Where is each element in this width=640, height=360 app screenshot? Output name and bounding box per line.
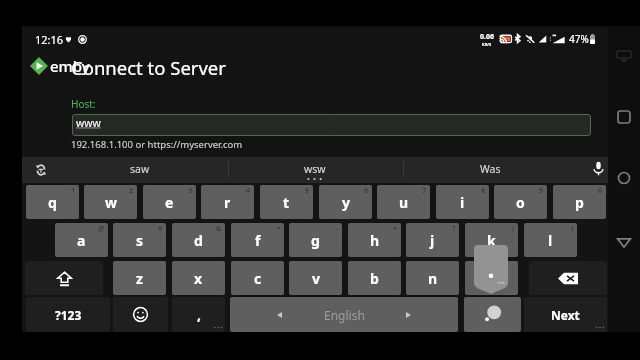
staticText: 12:16	[35, 32, 64, 47]
button[interactable]: l	[524, 223, 577, 257]
staticText: KB/S	[482, 42, 492, 47]
button[interactable]: Hide keyboard	[616, 48, 632, 64]
staticText: t	[283, 193, 290, 212]
staticText: www	[76, 116, 101, 130]
staticText: n	[428, 269, 438, 288]
button[interactable]: Shift	[25, 261, 103, 295]
button[interactable]: s	[113, 223, 166, 257]
staticText: 4	[246, 186, 251, 196]
staticText: Connect to Server	[71, 55, 226, 80]
staticText: x	[194, 269, 203, 288]
staticText: g	[311, 231, 320, 250]
staticText: f	[255, 231, 261, 250]
button[interactable]: i	[436, 185, 489, 219]
button[interactable]: m	[465, 261, 518, 295]
staticText: y	[342, 193, 350, 212]
staticText: 47%	[569, 32, 589, 46]
staticText: 2	[129, 186, 134, 196]
button[interactable]: n	[406, 261, 459, 295]
staticText: @	[98, 224, 105, 234]
staticText: saw	[130, 162, 150, 176]
button[interactable]: www	[72, 114, 591, 136]
staticText: v	[312, 269, 320, 288]
staticText: 192.168.1.100 or https://myserver.com	[71, 138, 243, 151]
button[interactable]: ?123	[26, 297, 110, 332]
button[interactable]: x	[172, 261, 225, 295]
staticText: ,	[197, 305, 201, 324]
button[interactable]: v	[289, 261, 342, 295]
staticText: d	[194, 231, 203, 250]
staticText: e	[165, 193, 174, 212]
staticText: Next	[551, 307, 580, 323]
button[interactable]: ,	[172, 297, 225, 332]
button[interactable]: k	[465, 223, 518, 257]
staticText: j	[430, 231, 435, 250]
staticText: 3	[188, 186, 193, 196]
button[interactable]: b	[348, 261, 401, 295]
staticText: k	[487, 231, 496, 250]
button[interactable]: Emoji	[113, 297, 168, 332]
staticText: (	[512, 224, 515, 234]
staticText: s	[136, 231, 144, 250]
staticText: q	[48, 193, 57, 212]
button[interactable]: d	[172, 223, 225, 257]
staticText: &	[216, 224, 222, 234]
button[interactable]: q	[26, 185, 79, 219]
staticText: i	[460, 193, 465, 212]
button[interactable]: t	[260, 185, 313, 219]
button[interactable]: Voice input	[593, 161, 604, 176]
button[interactable]: r	[201, 185, 254, 219]
button[interactable]: o	[494, 185, 547, 219]
button[interactable]: g	[289, 223, 342, 257]
staticText: ?	[452, 224, 456, 234]
button[interactable]: saw	[53, 157, 227, 183]
button[interactable]: w	[84, 185, 137, 219]
staticText: l	[548, 231, 553, 250]
button[interactable]: wsw	[228, 157, 402, 183]
button[interactable]: h	[348, 223, 401, 257]
staticText: c	[254, 269, 262, 288]
staticText: o	[516, 193, 525, 212]
staticText: 5	[305, 186, 310, 196]
button[interactable]: Translate	[36, 164, 46, 176]
button[interactable]: p	[553, 185, 606, 219]
staticText: p	[575, 193, 584, 212]
button[interactable]: Space	[230, 297, 458, 332]
button[interactable]: z	[113, 261, 166, 295]
button[interactable]: Home	[617, 171, 631, 185]
button[interactable]: u	[377, 185, 430, 219]
staticText: 0	[598, 186, 603, 196]
button[interactable]: Delete	[529, 261, 607, 295]
staticText: Was	[480, 162, 501, 176]
staticText: 9	[539, 186, 544, 196]
button[interactable]: e	[143, 185, 196, 219]
staticText: w	[105, 193, 117, 212]
button[interactable]: Back	[616, 234, 632, 250]
staticText: 0.06	[480, 32, 494, 42]
staticText: z	[136, 269, 143, 288]
staticText: a	[77, 231, 86, 250]
staticText: -	[336, 224, 339, 234]
staticText: h	[370, 231, 380, 250]
staticText: +	[393, 224, 398, 234]
staticText: 7	[422, 186, 427, 196]
button[interactable]: y	[319, 185, 372, 219]
button[interactable]: c	[231, 261, 284, 295]
staticText: u	[399, 193, 409, 212]
button[interactable]: a	[55, 223, 108, 257]
button[interactable]: Was	[403, 157, 577, 183]
staticText: 8	[481, 186, 486, 196]
staticText: 1	[71, 186, 76, 196]
staticText: ?123	[55, 307, 82, 323]
button[interactable]: f	[231, 223, 284, 257]
button[interactable]: Search	[464, 297, 521, 332]
button[interactable]: Recent apps	[617, 110, 631, 124]
button[interactable]: Next	[524, 297, 607, 332]
button[interactable]: j	[406, 223, 459, 257]
staticText: )	[571, 224, 574, 234]
staticText: emby	[50, 56, 90, 76]
staticText: r	[224, 193, 231, 212]
staticText: 6	[364, 186, 369, 196]
staticText: Host:	[71, 97, 96, 111]
staticText: b	[370, 269, 379, 288]
